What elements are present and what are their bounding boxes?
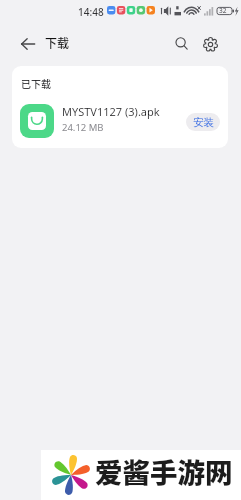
button[interactable]: 安装: [186, 113, 220, 131]
staticText: 24.12 MB: [62, 121, 104, 134]
button[interactable]: Back: [14, 30, 41, 57]
button[interactable]: MYSTV1127 (3).apk: [12, 98, 228, 144]
staticText: 14:48: [78, 5, 104, 19]
staticText: 下载: [45, 34, 70, 51]
staticText: 已下载: [21, 76, 51, 90]
button[interactable]: Search: [168, 30, 196, 58]
staticText: MYSTV1127 (3).apk: [62, 104, 160, 119]
staticText: 32: [219, 6, 227, 15]
button[interactable]: Settings: [196, 30, 224, 58]
staticText: 爱酱手游网: [95, 451, 233, 491]
staticText: 安装: [193, 116, 214, 129]
